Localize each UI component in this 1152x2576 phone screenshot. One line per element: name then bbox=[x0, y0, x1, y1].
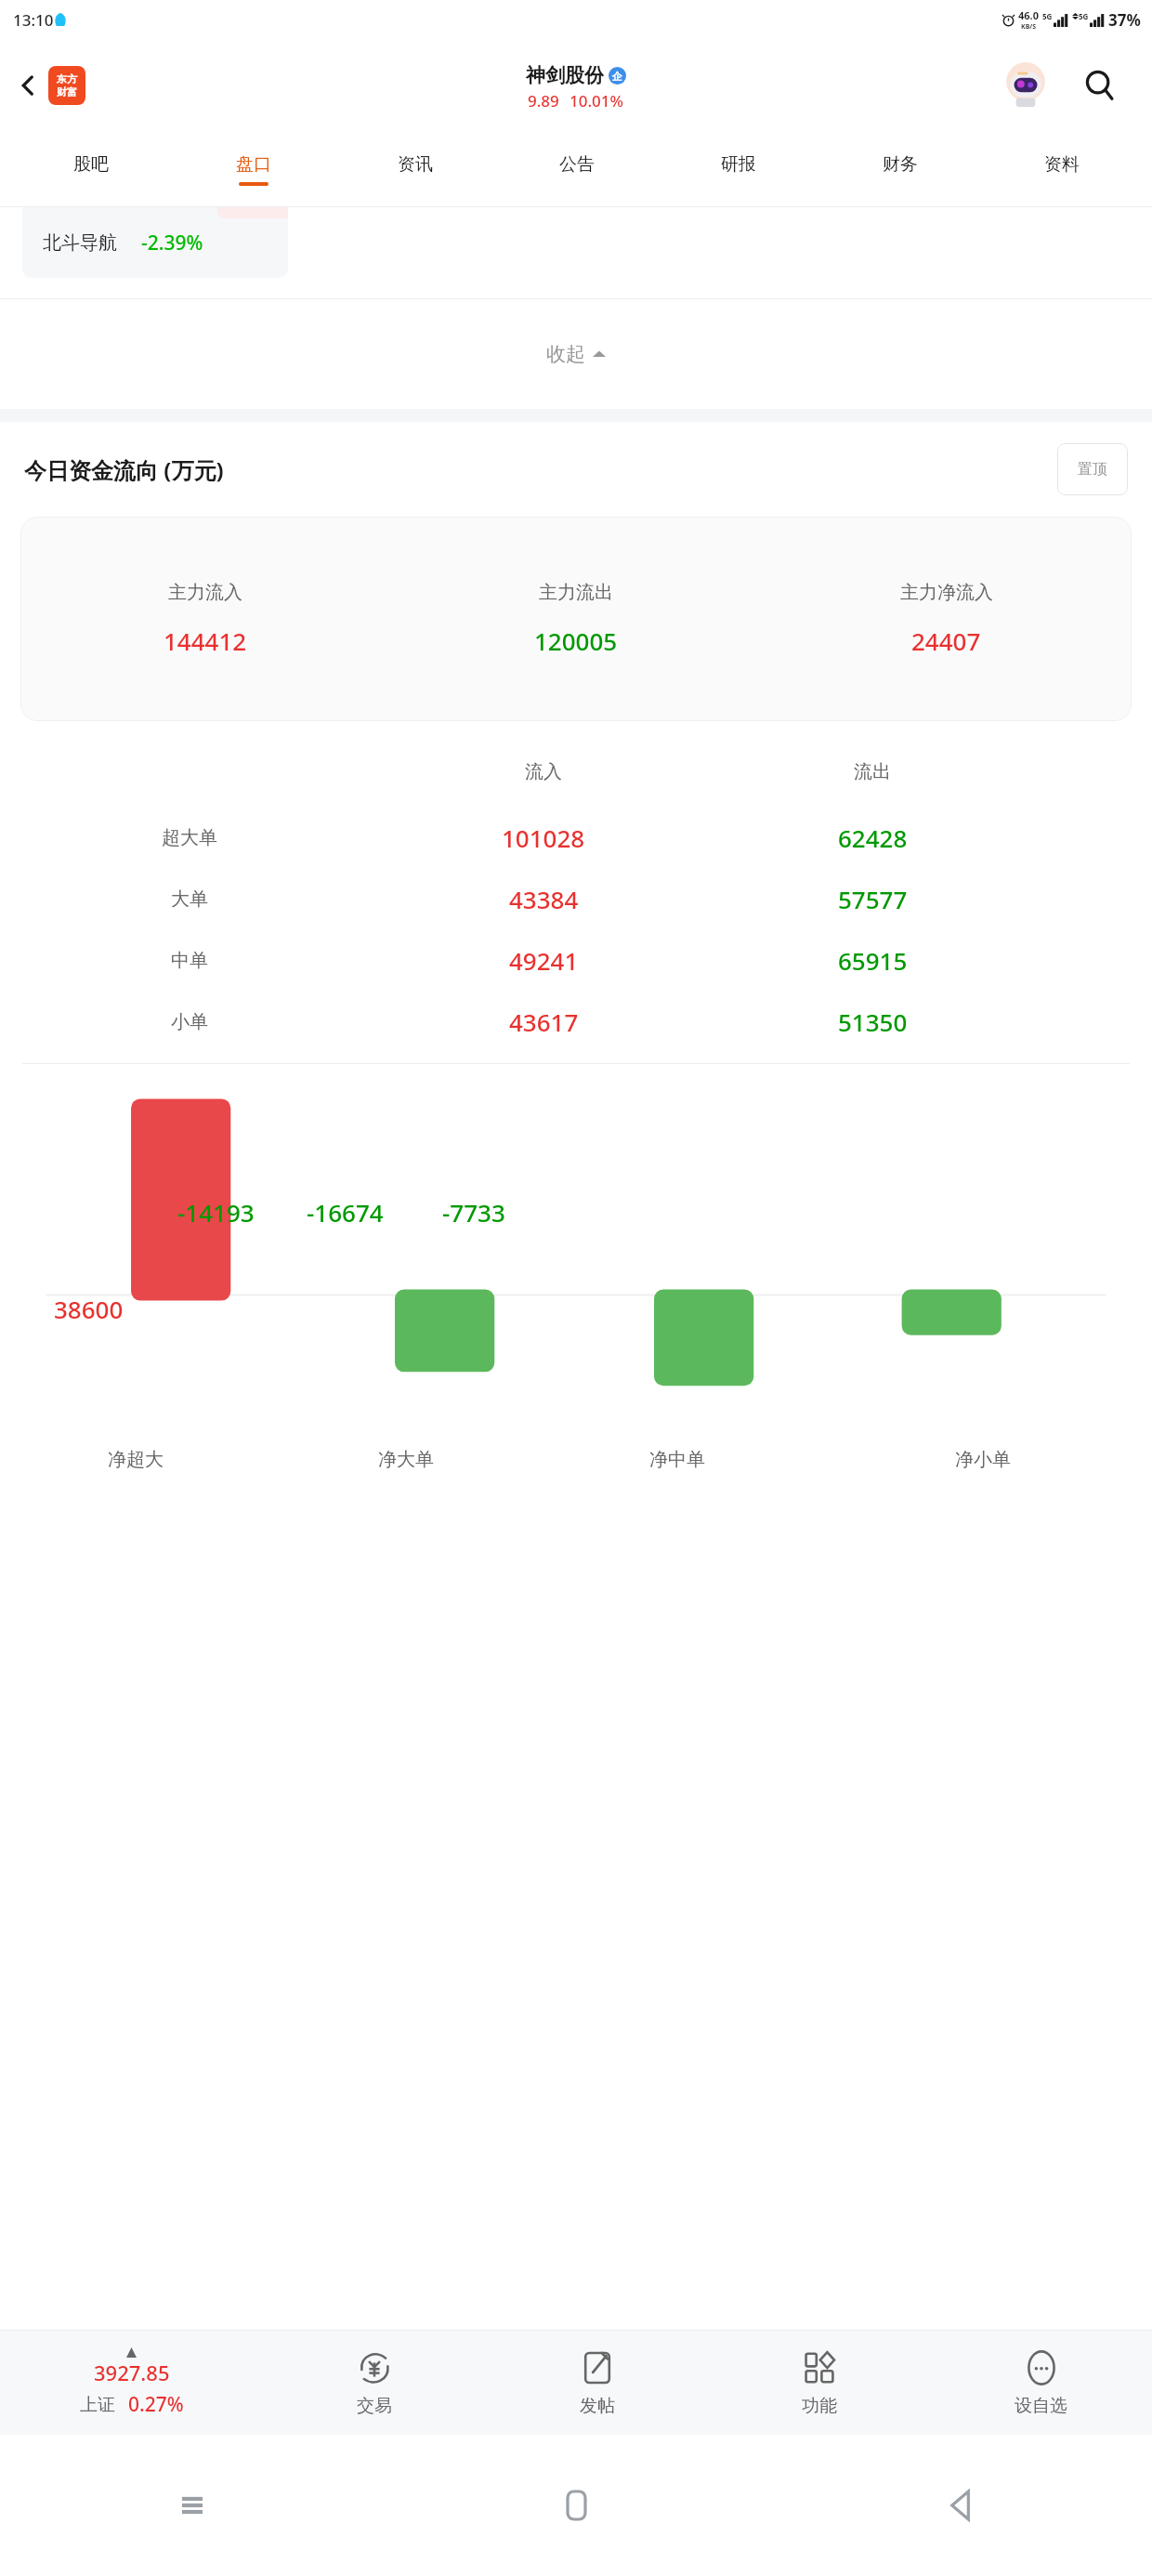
button[interactable]: 收起 bbox=[0, 299, 1152, 409]
button[interactable]: 超大单 bbox=[0, 807, 1152, 868]
staticText: 流入 bbox=[525, 760, 562, 783]
staticText: 功能 bbox=[802, 2395, 837, 2417]
staticText: 49241 bbox=[509, 944, 579, 977]
button[interactable]: 大单 bbox=[0, 868, 1152, 929]
button[interactable]: 股吧 bbox=[9, 153, 172, 186]
button[interactable]: 置顶 bbox=[1057, 443, 1128, 495]
button[interactable]: Assistant bbox=[1000, 59, 1052, 112]
staticText: 企 bbox=[612, 70, 622, 83]
staticText: 24407 bbox=[911, 624, 981, 657]
button[interactable]: 设自选 bbox=[930, 2349, 1152, 2417]
staticText: 43617 bbox=[509, 1005, 579, 1038]
staticText: 研报 bbox=[721, 153, 756, 176]
staticText: 今日资金流向 (万元) bbox=[24, 454, 224, 485]
staticText: 盘口 bbox=[236, 153, 271, 176]
staticText: 13:10 bbox=[13, 9, 54, 31]
staticText: 主力流入 bbox=[168, 581, 242, 604]
staticText: 小单 bbox=[171, 1010, 208, 1033]
button[interactable]: Back bbox=[9, 67, 46, 104]
staticText: 北斗导航 bbox=[43, 231, 117, 255]
staticText: 公告 bbox=[559, 153, 595, 176]
button[interactable]: Back bbox=[768, 2459, 1152, 2552]
staticText: 144412 bbox=[164, 624, 247, 657]
staticText: 净中单 bbox=[649, 1448, 705, 1471]
staticText: 37% bbox=[1108, 9, 1141, 31]
staticText: 主力流出 bbox=[539, 581, 613, 604]
staticText: 置顶 bbox=[1078, 460, 1107, 479]
button[interactable]: 公告 bbox=[496, 153, 658, 186]
staticText: KB/S bbox=[1021, 22, 1037, 32]
staticText: 3927.85 bbox=[94, 2359, 170, 2386]
button[interactable]: 资料 bbox=[981, 153, 1143, 186]
staticText: 65915 bbox=[838, 944, 908, 977]
staticText: 财富 bbox=[57, 85, 77, 99]
staticText: 5G bbox=[1042, 11, 1053, 21]
button[interactable]: 财务 bbox=[819, 153, 981, 186]
staticText: 设自选 bbox=[1015, 2395, 1067, 2417]
staticText: 43384 bbox=[509, 883, 579, 915]
button[interactable]: Search bbox=[1074, 59, 1126, 112]
staticText: 46.0 bbox=[1018, 8, 1039, 22]
staticText: 10.01% bbox=[569, 90, 624, 112]
staticText: 101028 bbox=[502, 821, 585, 854]
staticText: 大单 bbox=[171, 887, 208, 911]
staticText: 股吧 bbox=[73, 153, 109, 176]
staticText: 中单 bbox=[171, 949, 208, 972]
staticText: 净小单 bbox=[955, 1448, 1011, 1471]
staticText: 资讯 bbox=[398, 153, 433, 176]
button[interactable]: 主力流入 bbox=[20, 517, 1132, 721]
staticText: 神剑股份 bbox=[526, 63, 604, 87]
staticText: 主力净流入 bbox=[900, 581, 993, 604]
staticText: 净超大 bbox=[108, 1448, 164, 1471]
staticText: 5G bbox=[1079, 11, 1089, 21]
button[interactable]: 资讯 bbox=[334, 153, 496, 186]
staticText: -7733 bbox=[442, 1196, 505, 1229]
button[interactable]: Recents bbox=[0, 2459, 385, 2552]
staticText: 财务 bbox=[883, 153, 918, 176]
staticText: 发帖 bbox=[580, 2395, 615, 2417]
button[interactable]: 盘口 bbox=[172, 153, 334, 186]
staticText: 51350 bbox=[838, 1005, 908, 1038]
button[interactable]: Home bbox=[385, 2459, 768, 2552]
staticText: 62428 bbox=[838, 821, 908, 854]
button[interactable]: 北斗导航 bbox=[22, 207, 288, 278]
staticText: 交易 bbox=[357, 2395, 392, 2417]
staticText: -16674 bbox=[307, 1196, 384, 1229]
button[interactable]: 中单 bbox=[0, 929, 1152, 991]
staticText: 57577 bbox=[838, 883, 908, 915]
staticText: 38600 bbox=[54, 1293, 124, 1325]
staticText: 120005 bbox=[534, 624, 618, 657]
button[interactable]: 东方 bbox=[48, 66, 85, 105]
other: Back bbox=[17, 74, 39, 97]
button[interactable]: 小单 bbox=[0, 991, 1152, 1052]
staticText: 东方 bbox=[57, 72, 77, 85]
staticText: 流出 bbox=[854, 760, 891, 783]
staticText: 9.89 bbox=[528, 90, 559, 112]
button[interactable]: 发帖 bbox=[486, 2349, 708, 2417]
staticText: 超大单 bbox=[162, 826, 217, 849]
staticText: 净大单 bbox=[378, 1448, 434, 1471]
staticText: -2.39% bbox=[141, 230, 203, 256]
staticText: 收起 bbox=[546, 342, 585, 366]
button[interactable]: 3927.85 bbox=[0, 2347, 263, 2418]
staticText: 上证 bbox=[80, 2394, 115, 2416]
button[interactable]: 功能 bbox=[708, 2349, 930, 2417]
staticText: 0.27% bbox=[128, 2391, 184, 2418]
staticText: -14193 bbox=[177, 1196, 255, 1229]
staticText: 资料 bbox=[1044, 153, 1080, 176]
button[interactable]: 研报 bbox=[658, 153, 819, 186]
button[interactable]: 交易 bbox=[263, 2349, 486, 2417]
